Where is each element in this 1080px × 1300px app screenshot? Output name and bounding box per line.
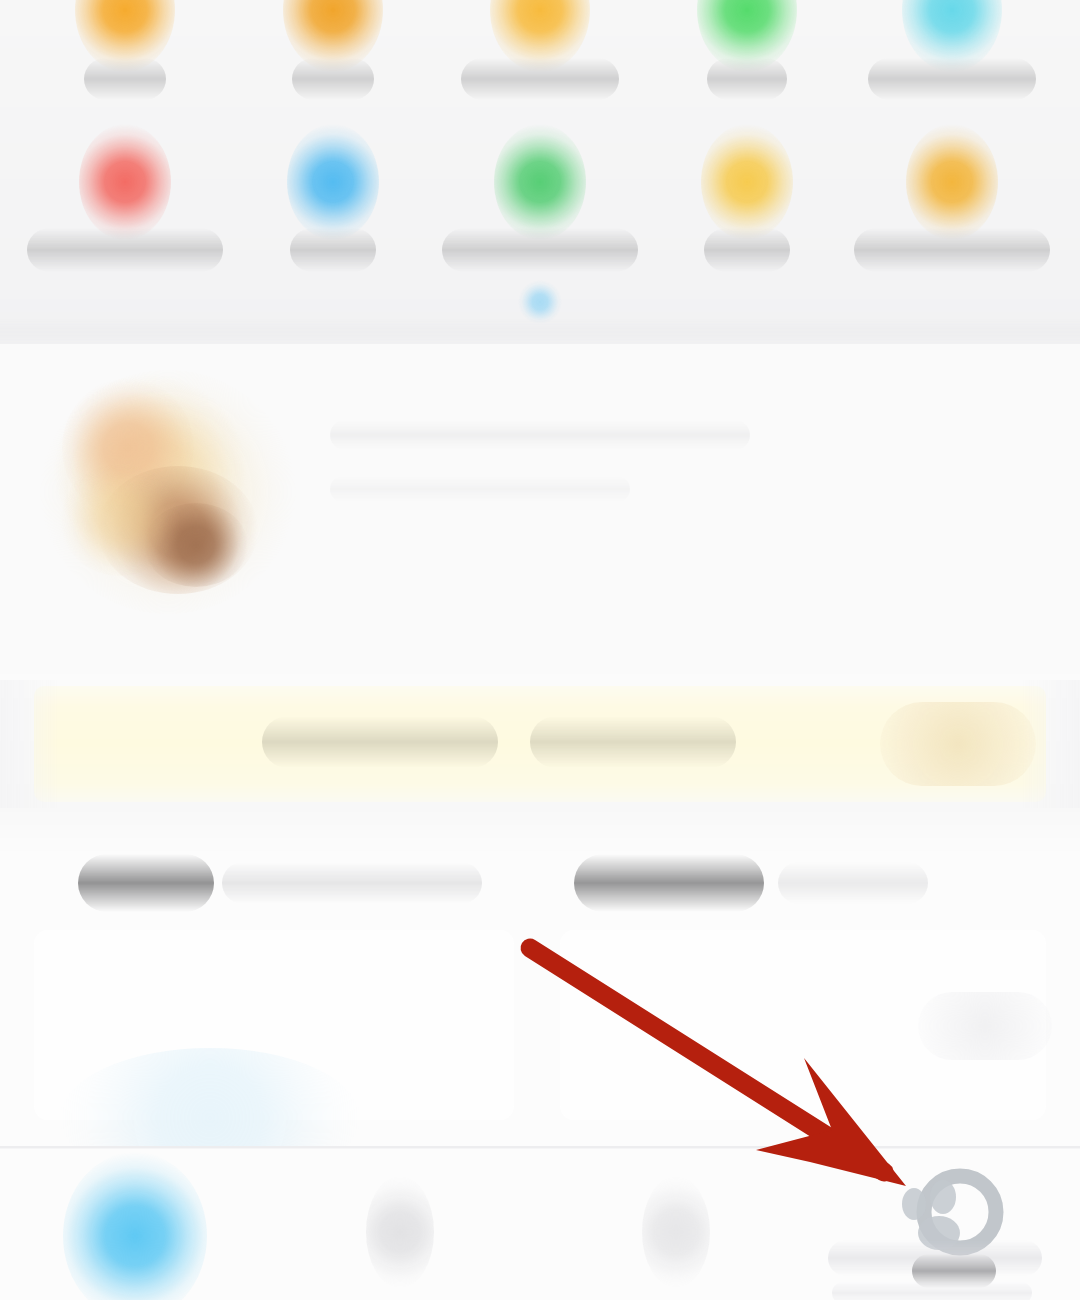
button[interactable]: Home — [0, 1146, 270, 1300]
other: Annotation arrow pointing to 我的 tab — [0, 0, 1080, 1300]
button[interactable]: Messages — [540, 1146, 810, 1300]
button[interactable]: Orders — [270, 1146, 540, 1300]
button[interactable]: Profile 我的 — [810, 1146, 1080, 1300]
